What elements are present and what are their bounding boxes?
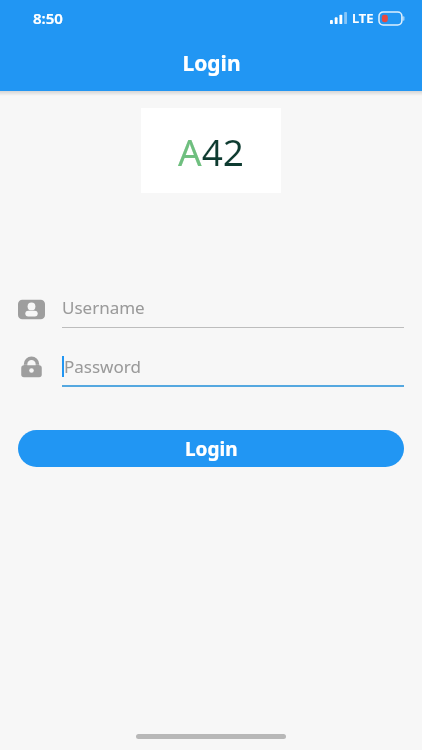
staticText: Login	[185, 436, 238, 462]
staticText: 8:50	[33, 8, 63, 28]
staticText: Username	[62, 296, 145, 319]
other: Password	[18, 354, 45, 381]
button[interactable]: Password	[0, 347, 422, 395]
button[interactable]: Username	[0, 288, 422, 336]
button[interactable]: Login	[18, 430, 404, 467]
staticText: A42	[178, 126, 244, 176]
staticText: Password	[64, 355, 141, 378]
staticText: LTE	[352, 9, 374, 27]
other: Username	[18, 296, 45, 323]
staticText: Login	[182, 49, 241, 78]
